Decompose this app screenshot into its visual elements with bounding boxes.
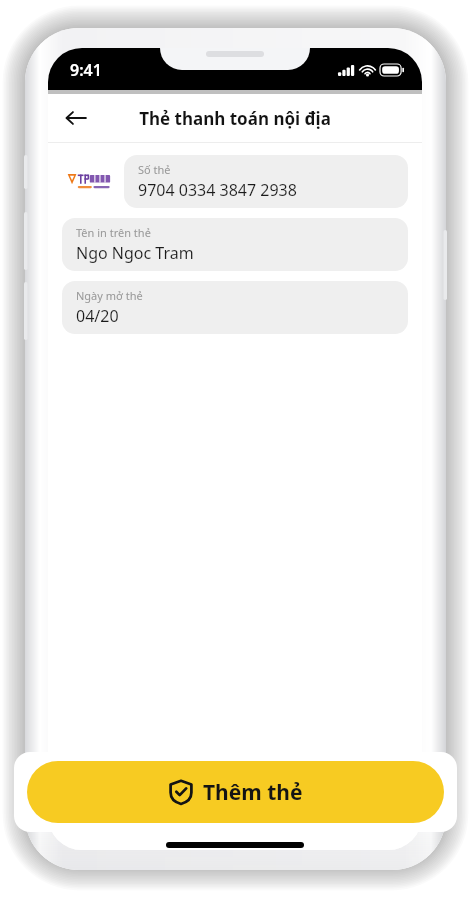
staticText: Ngày mở thẻ: [76, 288, 143, 303]
button[interactable]: Back: [56, 98, 96, 138]
button[interactable]: Ngày mở thẻ: [62, 281, 408, 334]
staticText: Thẻ thanh toán nội địa: [139, 107, 331, 130]
button[interactable]: Thêm thẻ: [27, 761, 444, 823]
staticText: 9:41: [70, 59, 102, 81]
button[interactable]: Tên in trên thẻ: [62, 218, 408, 271]
staticText: Số thẻ: [138, 162, 171, 177]
button[interactable]: Số thẻ: [124, 155, 408, 208]
staticText: 04/20: [76, 305, 119, 327]
staticText: Tên in trên thẻ: [76, 225, 151, 240]
staticText: Ngo Ngoc Tram: [76, 242, 194, 264]
button[interactable]: [62, 155, 115, 208]
staticText: 9704 0334 3847 2938: [138, 179, 297, 201]
staticText: Thêm thẻ: [203, 778, 303, 807]
